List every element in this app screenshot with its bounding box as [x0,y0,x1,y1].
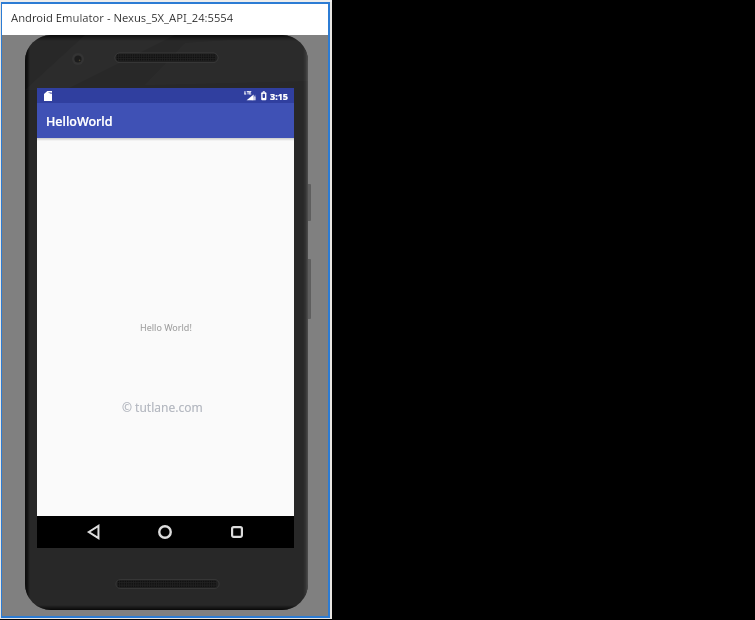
staticText: © tutlane.com [122,399,203,415]
button[interactable]: Recent apps [217,516,257,548]
staticText: Android Emulator - Nexus_5X_API_24:5554 [11,10,234,25]
button[interactable]: Home [145,516,185,548]
staticText: HelloWorld [46,113,113,130]
staticText: Hello World! [140,321,192,333]
staticText: 3:15 [270,90,288,102]
button[interactable]: Back [73,516,113,548]
